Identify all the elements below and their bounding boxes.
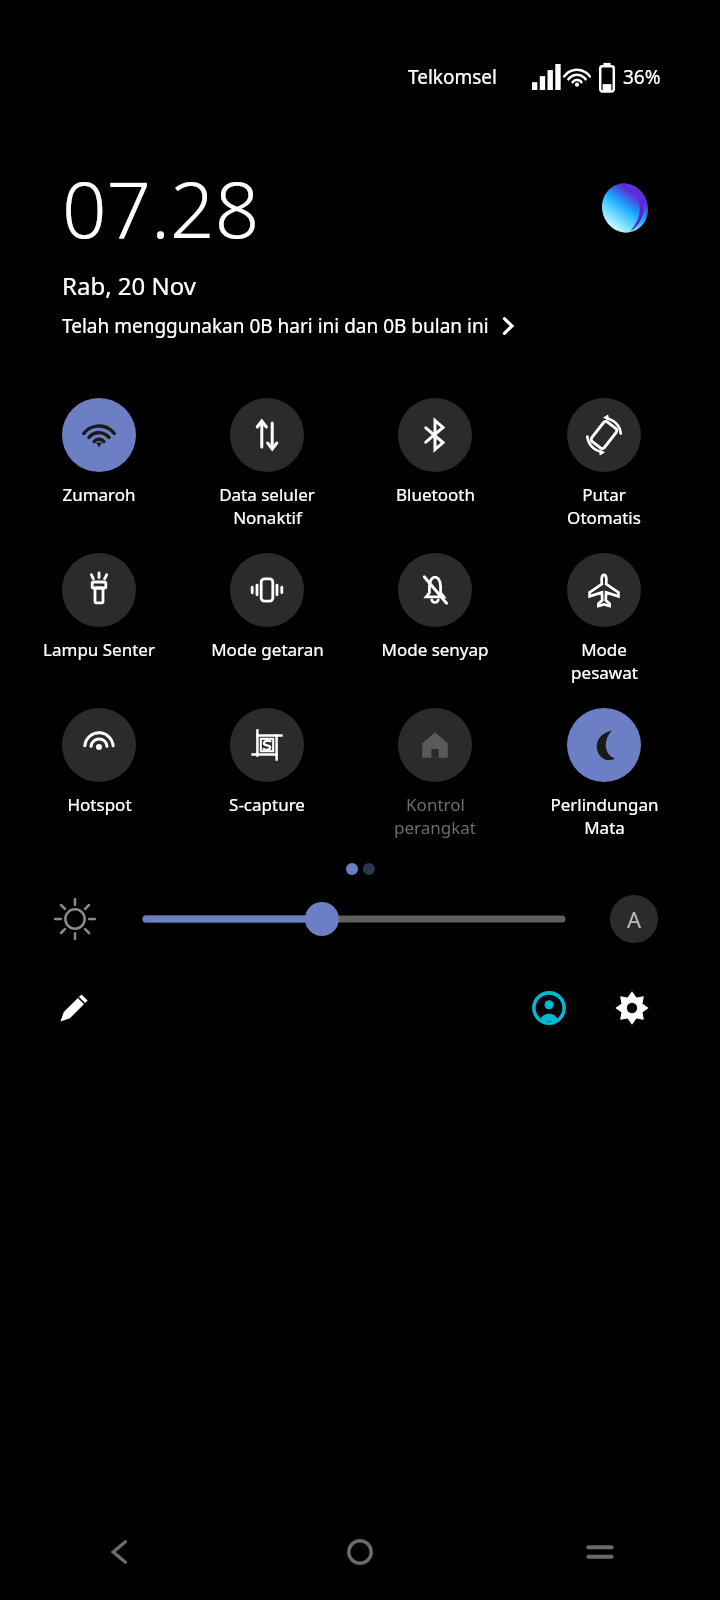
button[interactable]: Mode senyap [378,553,492,661]
staticText: perangkat [394,816,476,839]
button[interactable]: S-capture [210,708,324,816]
staticText: Putar [582,483,626,506]
staticText: Hotspot [67,793,132,816]
staticText: Lampu Senter [43,638,155,661]
staticText: Kontrol [406,793,465,816]
button[interactable]: Lampu Senter [42,553,156,661]
button[interactable]: Kontrol [378,708,492,839]
button[interactable]: Zumaroh [42,398,156,506]
staticText: A [627,904,642,934]
button[interactable]: Brightness [52,896,98,942]
staticText: Zumaroh [62,483,136,506]
button[interactable]: Bluetooth [378,398,492,506]
button[interactable]: Mode getaran [210,553,324,661]
button[interactable]: Mode [547,553,661,684]
staticText: Telkomsel [408,64,497,90]
button[interactable]: Profile logo [598,181,652,235]
staticText: Bluetooth [396,483,475,506]
button[interactable]: Hotspot [42,708,156,816]
button[interactable]: A [610,895,658,943]
staticText: Mode [581,638,627,661]
staticText: Data seluler [219,483,315,506]
button[interactable]: Edit [50,984,98,1032]
button[interactable]: Brightness slider [140,900,568,938]
staticText: Mode senyap [381,638,489,661]
button[interactable]: Telah menggunakan 0B hari ini dan 0B bul… [62,313,517,339]
staticText: 36% [623,64,661,90]
staticText: Mode getaran [211,638,324,661]
button[interactable]: Putar [547,398,661,529]
staticText: S-capture [229,793,305,816]
staticText: 07.28 [62,155,260,261]
staticText: Otomatis [567,506,641,529]
button[interactable]: Data seluler [210,398,324,529]
staticText: Perlindungan [550,793,659,816]
button[interactable]: Perlindungan [547,708,661,839]
staticText: Mata [584,816,625,839]
button[interactable]: Back [0,1504,240,1600]
staticText: Telah menggunakan 0B hari ini dan 0B bul… [62,313,489,339]
button[interactable]: Home [240,1504,480,1600]
button[interactable]: Settings [608,984,656,1032]
staticText: Rab, 20 Nov [62,269,196,302]
button[interactable]: Account [525,984,573,1032]
staticText: pesawat [571,661,638,684]
button[interactable]: Recent apps [480,1504,720,1600]
staticText: Nonaktif [233,506,302,529]
